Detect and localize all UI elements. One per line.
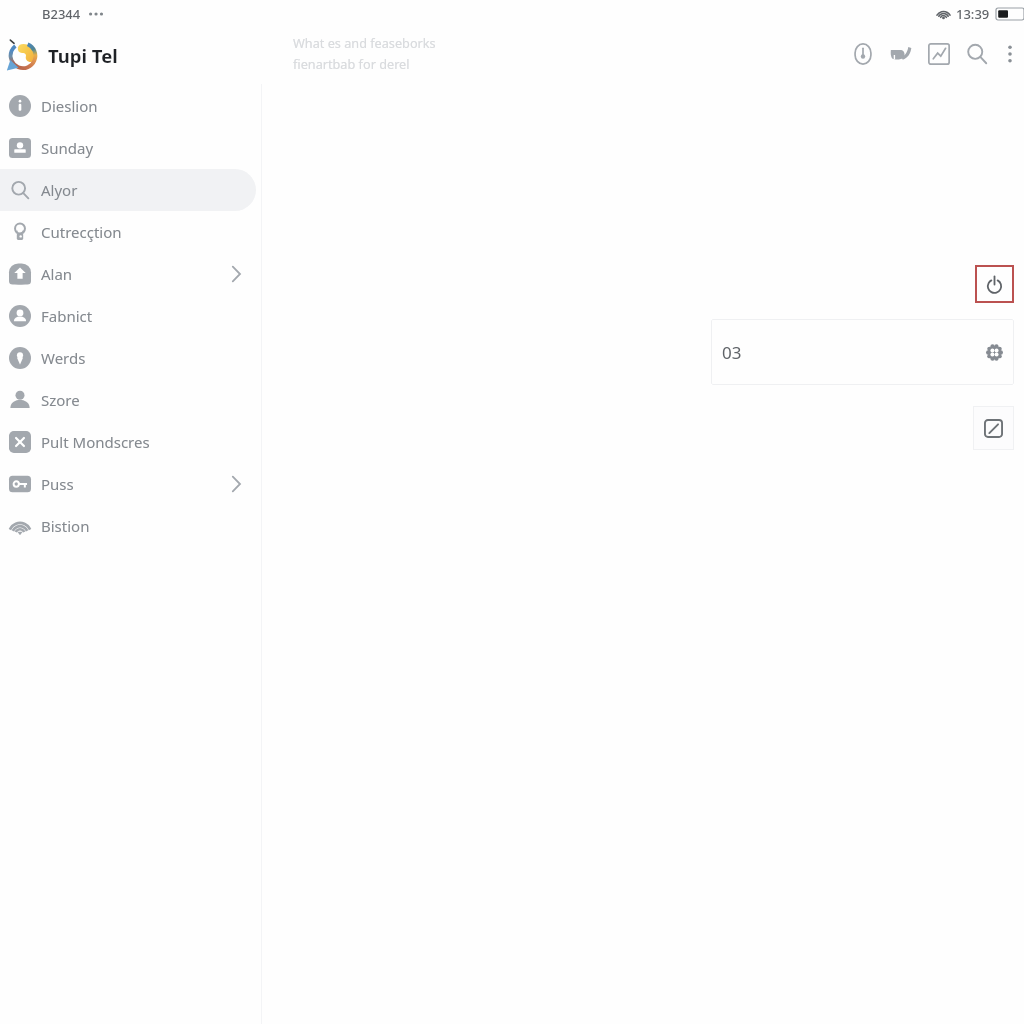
button[interactable]: Pult Mondscres	[0, 421, 256, 463]
button[interactable]: Fabnict	[0, 295, 256, 337]
staticText: Sunday	[41, 138, 94, 158]
staticText: Puss	[41, 474, 74, 494]
button[interactable]: Speed	[844, 35, 882, 73]
staticText: Cutrecçtion	[41, 222, 122, 242]
staticText: fienartbab for derel	[293, 55, 410, 72]
button[interactable]: More options	[996, 40, 1024, 68]
staticText: Szore	[41, 390, 80, 410]
staticText: 13:39	[956, 5, 990, 23]
button[interactable]: Werds	[0, 337, 256, 379]
button[interactable]: Edit	[973, 406, 1014, 450]
button[interactable]: Szore	[0, 379, 256, 421]
staticText: Tupi Tel	[48, 43, 118, 68]
staticText: Werds	[41, 348, 86, 368]
staticText: 03	[722, 341, 742, 364]
button[interactable]: Power	[975, 265, 1014, 303]
staticText: Alan	[41, 264, 73, 284]
staticText: Alyor	[41, 180, 78, 200]
button[interactable]: Bistion	[0, 505, 256, 547]
button[interactable]: 03	[711, 319, 1014, 385]
button[interactable]: Pointer	[882, 35, 920, 73]
button[interactable]: Cutrecçtion	[0, 211, 256, 253]
button[interactable]: Alan	[0, 253, 256, 295]
button[interactable]: Puss	[0, 463, 256, 505]
button[interactable]: Search	[958, 35, 996, 73]
button[interactable]: Sunday	[0, 127, 256, 169]
staticText: Bistion	[41, 516, 90, 536]
button[interactable]: Alyor	[0, 169, 256, 211]
staticText: Fabnict	[41, 306, 93, 326]
staticText: Pult Mondscres	[41, 432, 150, 452]
button[interactable]: Chart	[920, 35, 958, 73]
staticText: B2344	[42, 5, 81, 23]
staticText: Dieslion	[41, 96, 98, 116]
button[interactable]: Dieslion	[0, 85, 256, 127]
staticText: What es and feaseborks	[293, 34, 436, 51]
